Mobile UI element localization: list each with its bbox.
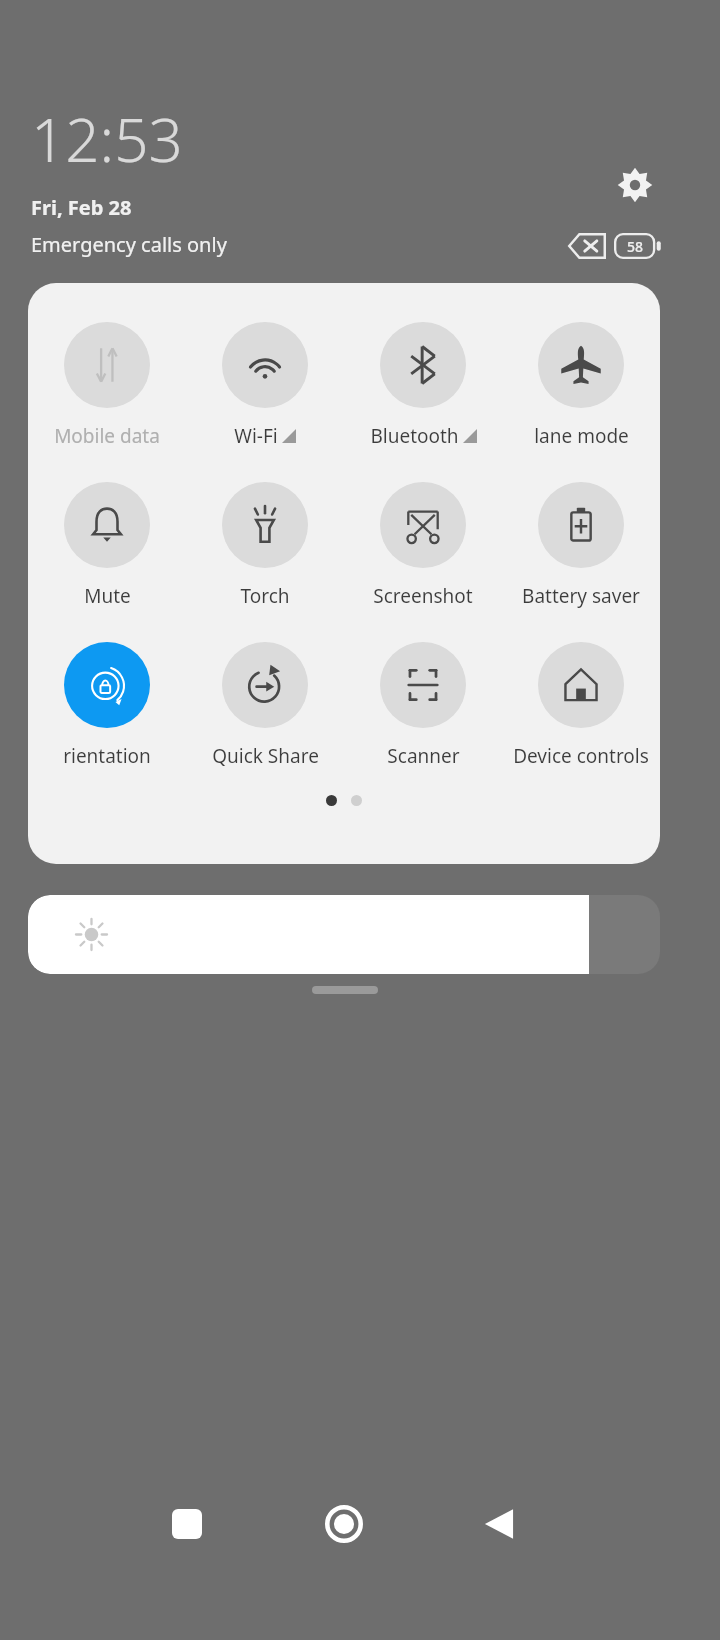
staticText: Quick Share [212,743,319,769]
button[interactable]: rientation [28,642,186,769]
button[interactable]: Quick Share [186,642,344,769]
staticText: Emergency calls only [31,231,227,258]
staticText: Device controls [513,743,649,769]
button[interactable]: Battery saver [502,482,660,609]
staticText: Wi-Fi [234,423,278,449]
button[interactable]: Torch [186,482,344,609]
staticText: Scanner [387,743,460,769]
button[interactable]: Settings [606,156,664,214]
button[interactable]: Wi-Fi [186,322,344,449]
button[interactable]: Recents [155,1492,219,1556]
button[interactable]: Bluetooth [344,322,502,449]
staticText: Torch [240,583,290,609]
staticText: lane mode [534,423,629,449]
staticText: Fri, Feb 28 [31,194,132,221]
staticText: Screenshot [373,583,473,609]
button[interactable]: Scanner [344,642,502,769]
staticText: 58 [627,237,644,256]
button[interactable]: Mobile data [28,322,186,449]
staticText: Mute [84,583,131,609]
staticText: Mobile data [54,423,160,449]
staticText: rientation [63,743,151,769]
button[interactable]: Screenshot [344,482,502,609]
button[interactable]: Device controls [502,642,660,769]
staticText: Battery saver [522,583,640,609]
button[interactable]: Brightness [28,895,660,974]
staticText: 12:53 [31,98,183,180]
button[interactable]: Back [467,1492,531,1556]
staticText: Bluetooth [370,423,459,449]
button[interactable]: lane mode [502,322,660,449]
button[interactable]: Home [312,1492,376,1556]
button[interactable]: Mute [28,482,186,609]
